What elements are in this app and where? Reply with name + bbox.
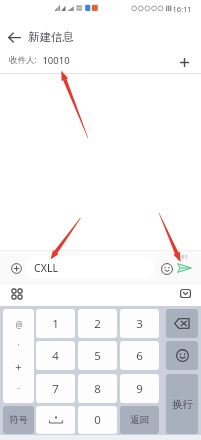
staticText: 6: [136, 348, 143, 364]
staticText: 5: [94, 348, 101, 364]
button[interactable]: 8: [78, 374, 117, 403]
staticText: 新建信息: [28, 30, 74, 44]
staticText: 3: [136, 316, 143, 332]
button[interactable]: Emoji keyboard: [166, 341, 198, 370]
staticText: 卡1: [180, 254, 188, 261]
staticText: 4: [52, 348, 59, 364]
staticText: +: [15, 359, 22, 374]
button[interactable]: Send: [175, 261, 194, 275]
button[interactable]: More options: [7, 284, 26, 303]
button[interactable]: Emoji: [156, 258, 177, 279]
button[interactable]: 3: [120, 309, 159, 338]
staticText: 10010: [42, 54, 70, 67]
staticText: 1: [52, 316, 59, 332]
staticText: 符号: [9, 414, 28, 426]
staticText: 0: [94, 412, 101, 428]
staticText: @: [15, 319, 23, 330]
staticText: 16:11: [172, 4, 192, 14]
staticText: ·: [17, 338, 20, 350]
staticText: 9: [136, 381, 143, 397]
button[interactable]: 4: [36, 341, 75, 370]
staticText: 2: [94, 316, 101, 332]
button[interactable]: Backspace: [166, 309, 198, 338]
button[interactable]: 返回: [120, 406, 159, 434]
button[interactable]: Add contact: [173, 51, 195, 73]
button[interactable]: CXLL: [25, 256, 155, 279]
button[interactable]: Back: [3, 26, 25, 48]
staticText: 换行: [172, 398, 193, 411]
button[interactable]: 符号: [3, 406, 34, 434]
button[interactable]: Space: [36, 406, 75, 434]
button[interactable]: 收件人:: [0, 50, 201, 70]
button[interactable]: 5: [78, 341, 117, 370]
button[interactable]: 7: [36, 374, 75, 403]
button[interactable]: 6: [120, 341, 159, 370]
button[interactable]: Add attachment: [5, 257, 28, 279]
staticText: 8: [94, 381, 101, 397]
staticText: 收件人:: [9, 54, 37, 66]
staticText: -: [17, 382, 20, 393]
button[interactable]: Hide keyboard: [176, 284, 195, 303]
button[interactable]: 9: [120, 374, 159, 403]
button[interactable]: 0: [78, 406, 117, 434]
staticText: 7: [52, 381, 59, 397]
button[interactable]: 换行: [166, 374, 198, 434]
staticText: 返回: [130, 414, 149, 426]
staticText: CXLL: [34, 261, 58, 275]
button[interactable]: @: [3, 309, 34, 403]
button[interactable]: 2: [78, 309, 117, 338]
button[interactable]: 1: [36, 309, 75, 338]
